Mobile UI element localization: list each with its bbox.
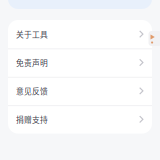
button[interactable]: 关于工具 — [8, 20, 152, 48]
staticText: 捐赠支持 — [16, 114, 48, 125]
staticText: 意见反馈 — [16, 85, 48, 97]
button[interactable]: 意见反馈 — [8, 77, 152, 105]
staticText: 关于工具 — [16, 29, 48, 40]
button[interactable]: 捐赠支持 — [8, 105, 152, 134]
button[interactable]: 免责声明 — [8, 48, 152, 77]
button[interactable]: Play — [148, 31, 160, 46]
staticText: 免责声明 — [16, 57, 48, 68]
